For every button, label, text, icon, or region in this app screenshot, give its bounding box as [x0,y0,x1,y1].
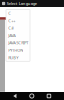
staticText: C# [8,25,14,31]
button[interactable]: RUBY [6,54,30,61]
button[interactable]: C++ [6,17,30,24]
button[interactable]: Home [30,94,34,98]
button[interactable]: C [6,9,30,17]
button[interactable]: JAVA [6,32,30,39]
staticText: JAVA [8,33,16,38]
staticText: C [8,10,11,16]
button[interactable]: PYTHON [6,46,30,54]
button[interactable]: Recent apps [47,94,51,98]
button[interactable]: Back [13,94,16,98]
button[interactable]: C# [6,24,30,32]
staticText: C++ [8,18,15,23]
staticText: PYTHON [8,47,23,53]
staticText: JAVASCRIPT [8,40,28,45]
button[interactable]: JAVASCRIPT [6,39,30,46]
staticText: Select Language [7,1,37,6]
staticText: RUBY [8,55,18,60]
